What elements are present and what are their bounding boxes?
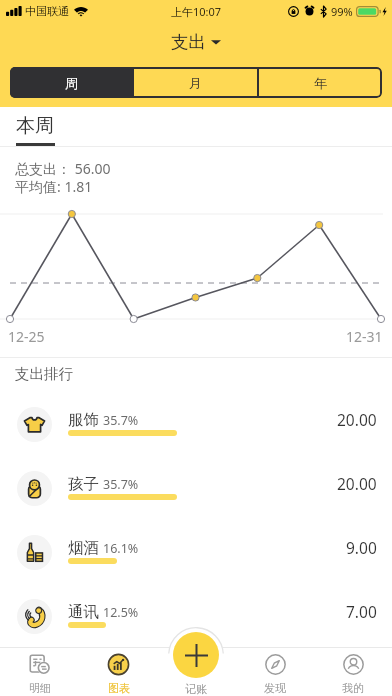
staticText: 通讯 [68,602,99,622]
staticText: 发现 [264,681,286,695]
staticText: 12.5% [103,604,139,621]
staticText: 12-25 [8,327,45,346]
staticText: 支出 [171,31,206,53]
button[interactable]: 月 [134,67,257,98]
button[interactable]: 图表 [79,647,158,696]
staticText: 年 [314,75,327,91]
button[interactable]: 记账 Add [173,632,219,678]
button[interactable]: 我的 [314,647,392,696]
staticText: 月 [189,75,202,91]
staticText: 支出排行 [15,365,73,383]
staticText: 图表 [108,681,130,695]
button[interactable]: 明细 [0,647,79,696]
staticText: 总支出： 56.00 [15,159,111,178]
staticText: 平均值: 1.81 [15,177,93,196]
staticText: 7.00 [346,601,377,622]
staticText: 烟酒 [68,538,99,558]
staticText: 我的 [342,681,364,695]
button[interactable]: 烟酒 [0,522,392,586]
staticText: 上午10:07 [171,4,222,19]
staticText: 9.00 [346,537,377,558]
staticText: 35.7% [103,412,139,429]
staticText: 中国联通 [25,4,69,18]
staticText: 孩子 [68,474,99,494]
button[interactable]: 孩子 [0,458,392,522]
button[interactable]: 服饰 [0,394,392,458]
staticText: 20.00 [337,409,377,430]
staticText: 明细 [29,681,51,695]
staticText: 35.7% [103,476,139,493]
staticText: 周 [65,75,78,91]
staticText: 99% [331,4,353,19]
staticText: 16.1% [103,540,139,557]
button[interactable]: 发现 [236,647,314,696]
staticText: 12-31 [346,327,383,346]
staticText: 服饰 [68,410,99,430]
staticText: 本周 [16,114,54,138]
staticText: 20.00 [337,473,377,494]
button[interactable]: 通讯 [0,586,392,650]
button[interactable]: 周 [10,67,132,98]
button[interactable]: 年 [259,67,382,98]
staticText: 记账 [185,682,207,696]
